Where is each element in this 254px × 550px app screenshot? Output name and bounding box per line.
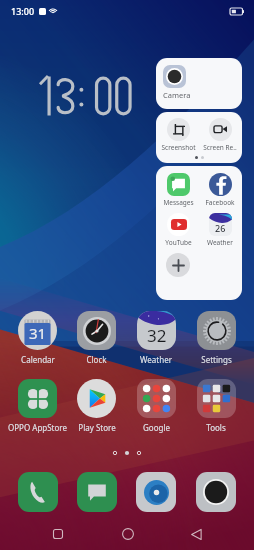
button[interactable]: 26 [199, 213, 241, 247]
staticText: Weather [140, 354, 172, 365]
button[interactable]: Play Store [67, 379, 126, 433]
button[interactable]: Settings [186, 311, 246, 365]
button[interactable]: Camera [156, 58, 242, 109]
button[interactable]: Messages [157, 173, 199, 207]
button[interactable]: Tools [186, 379, 246, 433]
staticText: Settings [201, 354, 232, 365]
staticText: Camera [163, 90, 191, 100]
staticText: Screenshot [161, 143, 196, 152]
staticText: Weather [207, 238, 233, 247]
staticText: Clock [86, 354, 107, 365]
button[interactable]: YouTube [157, 213, 199, 247]
button[interactable]: 32 [126, 311, 186, 365]
staticText: Messages [163, 198, 194, 207]
button[interactable]: Clock [67, 311, 126, 365]
button[interactable]: Home [110, 516, 146, 550]
staticText: Google [143, 422, 170, 433]
staticText: Play Store [78, 422, 116, 433]
button[interactable]: Screen Re.. [199, 118, 241, 152]
button[interactable]: Add widget [166, 253, 190, 277]
button[interactable]: Facebook [199, 173, 241, 207]
staticText: Tools [206, 422, 226, 433]
button[interactable]: Camera [196, 472, 236, 512]
button[interactable]: Phone [18, 472, 58, 512]
staticText: Calendar [21, 354, 55, 365]
staticText: 26 [215, 222, 226, 234]
staticText: 32 [147, 324, 167, 347]
staticText: Facebook [205, 198, 235, 207]
button[interactable]: Screenshot [157, 118, 199, 152]
button[interactable]: Back [178, 516, 214, 550]
staticText: 13:00 [11, 5, 35, 17]
button[interactable]: OPPO AppStore [8, 379, 67, 433]
staticText: 31 [29, 323, 47, 343]
staticText: YouTube [165, 238, 192, 247]
button[interactable]: Browser [136, 472, 176, 512]
button[interactable]: Messages [77, 472, 117, 512]
button[interactable]: Recents [40, 516, 76, 550]
staticText: Screen Re.. [203, 143, 237, 152]
button[interactable]: Google [126, 379, 186, 433]
staticText: OPPO AppStore [8, 422, 67, 433]
button[interactable]: 31 [8, 311, 67, 365]
